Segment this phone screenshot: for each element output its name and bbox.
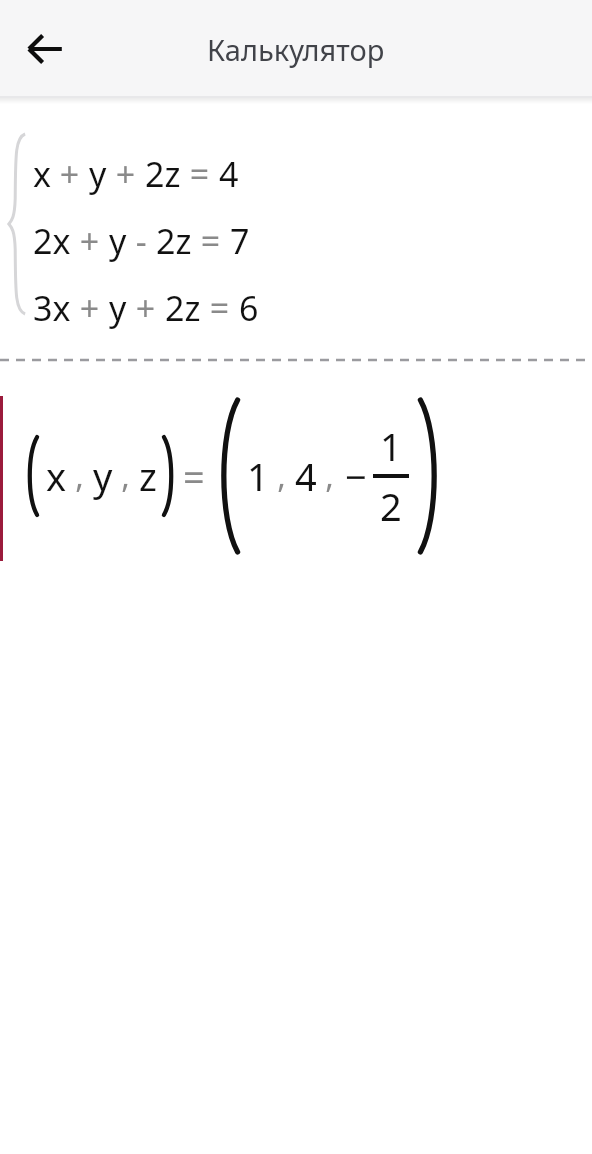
- staticText: 3x: [33, 285, 71, 331]
- staticText: −: [345, 450, 367, 502]
- staticText: ,: [113, 454, 139, 498]
- staticText: x: [46, 450, 67, 502]
- staticText: z: [139, 450, 157, 502]
- staticText: =: [192, 218, 230, 264]
- staticText: y: [109, 285, 127, 331]
- staticText: +: [51, 151, 89, 197]
- staticText: ,: [317, 454, 343, 498]
- staticText: 2x: [33, 218, 71, 264]
- staticText: 2z: [165, 285, 201, 331]
- button[interactable]: Back: [14, 18, 76, 80]
- staticText: ,: [269, 454, 295, 498]
- staticText: =: [181, 151, 219, 197]
- staticText: +: [71, 285, 109, 331]
- staticText: x: [33, 151, 51, 197]
- staticText: 1: [247, 450, 269, 502]
- staticText: 2z: [145, 151, 181, 197]
- staticText: y: [93, 450, 113, 502]
- staticText: 2: [380, 480, 402, 532]
- staticText: +: [127, 285, 165, 331]
- staticText: 2z: [156, 218, 192, 264]
- staticText: +: [107, 151, 145, 197]
- staticText: -: [127, 218, 156, 264]
- staticText: y: [89, 151, 107, 197]
- staticText: 6: [239, 285, 259, 331]
- staticText: y: [109, 218, 127, 264]
- staticText: 4: [219, 151, 239, 197]
- staticText: =: [201, 285, 239, 331]
- staticText: =: [183, 450, 205, 502]
- staticText: Калькулятор: [207, 30, 385, 69]
- staticText: 7: [230, 218, 250, 264]
- staticText: 1: [380, 420, 402, 472]
- staticText: 4: [295, 450, 317, 502]
- staticText: +: [71, 218, 109, 264]
- staticText: ,: [67, 454, 93, 498]
